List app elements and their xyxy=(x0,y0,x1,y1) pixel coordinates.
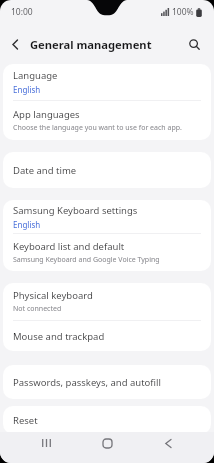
button[interactable]: Keyboard list and default xyxy=(3,234,211,271)
staticText: Date and time xyxy=(13,164,77,177)
button[interactable]: App languages xyxy=(3,101,211,140)
button[interactable] xyxy=(182,32,206,56)
staticText: Keyboard list and default xyxy=(13,240,125,253)
button[interactable] xyxy=(92,432,122,454)
button[interactable] xyxy=(31,432,61,454)
staticText: Reset xyxy=(13,414,38,427)
staticText: English xyxy=(13,84,41,95)
staticText: 10:00 xyxy=(11,6,33,18)
staticText: Mouse and trackpad xyxy=(13,330,105,343)
button[interactable]: Passwords, passkeys, and autofill xyxy=(3,365,211,399)
staticText: General management xyxy=(30,37,152,52)
staticText: Samsung Keyboard settings xyxy=(13,204,138,217)
staticText: App languages xyxy=(13,108,80,121)
staticText: Choose the language you want to use for … xyxy=(13,123,182,133)
button[interactable]: Language xyxy=(3,64,211,100)
button[interactable]: Date and time xyxy=(3,152,211,188)
staticText: 100% xyxy=(172,6,194,18)
button[interactable] xyxy=(153,432,183,454)
staticText: Passwords, passkeys, and autofill xyxy=(13,376,161,389)
button[interactable]: Mouse and trackpad xyxy=(3,321,211,351)
staticText: Physical keyboard xyxy=(13,289,93,302)
staticText: Not connected xyxy=(13,304,62,314)
staticText: Language xyxy=(13,69,58,82)
button[interactable]: Reset xyxy=(3,406,211,434)
staticText: Samsung Keyboard and Google Voice Typing xyxy=(13,255,160,265)
staticText: English xyxy=(13,219,41,230)
button[interactable]: Physical keyboard xyxy=(3,283,211,320)
button[interactable]: Samsung Keyboard settings xyxy=(3,200,211,233)
button[interactable] xyxy=(0,29,30,59)
